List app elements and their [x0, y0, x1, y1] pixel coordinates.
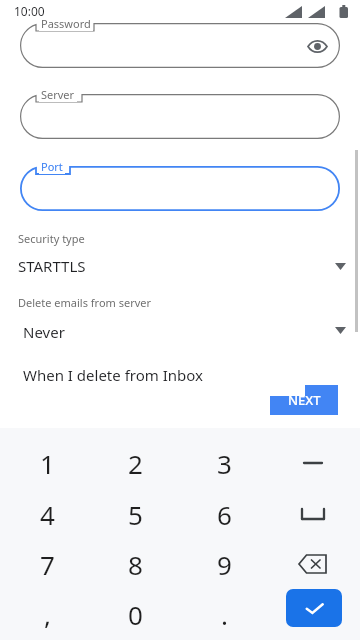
staticText: Password: [41, 16, 91, 31]
button[interactable]: Port: [20, 166, 340, 211]
button[interactable]: 4: [19, 494, 75, 534]
button[interactable]: 0: [107, 594, 163, 634]
staticText: Server: [41, 87, 75, 102]
button[interactable]: ,: [19, 594, 75, 634]
button[interactable]: 7: [19, 544, 75, 584]
staticText: 7: [40, 547, 55, 582]
staticText: Never: [18, 320, 60, 340]
staticText: 9: [217, 547, 232, 582]
button[interactable]: Backspace: [285, 544, 341, 584]
button[interactable]: Password: [20, 23, 340, 68]
button[interactable]: .: [196, 594, 252, 634]
button[interactable]: 2: [107, 443, 163, 483]
button[interactable]: Minus: [285, 443, 341, 483]
staticText: STARTTLS: [18, 256, 86, 276]
button[interactable]: 3: [196, 443, 252, 483]
staticText: 0: [128, 597, 143, 632]
staticText: Delete emails from server: [18, 295, 152, 310]
staticText: Security type: [18, 231, 85, 246]
staticText: Never: [23, 322, 65, 342]
button[interactable]: 6: [196, 494, 252, 534]
button[interactable]: 9: [196, 544, 252, 584]
button[interactable]: 8: [107, 544, 163, 584]
button[interactable]: Never: [13, 310, 305, 353]
button[interactable]: When I delete from Inbox: [13, 353, 305, 396]
staticText: Port: [41, 159, 63, 174]
staticText: ,: [44, 597, 51, 632]
button[interactable]: Delete emails from server: [0, 295, 360, 340]
staticText: 4: [40, 497, 55, 532]
button[interactable]: Server: [20, 94, 340, 139]
staticText: 6: [217, 497, 232, 532]
button[interactable]: Show password: [304, 33, 330, 59]
staticText: 2: [128, 446, 143, 481]
staticText: 1: [40, 446, 55, 481]
button[interactable]: Security type: [0, 231, 360, 276]
button[interactable]: NEXT: [270, 385, 338, 415]
button[interactable]: Space: [285, 494, 341, 534]
staticText: 10:00: [14, 3, 45, 19]
staticText: 5: [128, 497, 143, 532]
staticText: .: [221, 597, 228, 632]
staticText: 8: [128, 547, 143, 582]
button[interactable]: 1: [19, 443, 75, 483]
button[interactable]: Enter: [286, 589, 342, 627]
staticText: When I delete from Inbox: [23, 365, 203, 385]
button[interactable]: 5: [107, 494, 163, 534]
staticText: NEXT: [288, 391, 321, 409]
staticText: 3: [217, 446, 232, 481]
